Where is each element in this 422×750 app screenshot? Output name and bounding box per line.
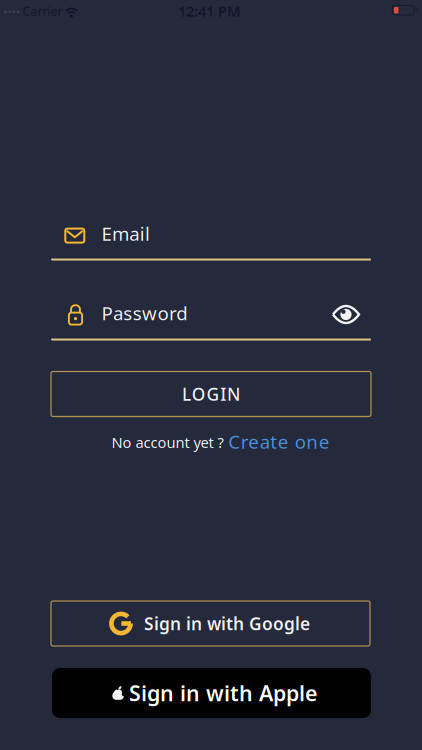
staticText: LOGIN — [182, 382, 240, 405]
button[interactable]: Sign in with Google — [51, 601, 370, 646]
button[interactable]: Show password — [324, 292, 368, 336]
staticText: Create one — [228, 429, 330, 454]
button[interactable]: Create one — [228, 429, 330, 454]
staticText: 12:41 PM — [178, 1, 241, 21]
button[interactable]: LOGIN — [51, 371, 371, 416]
staticText: Sign in with Google — [144, 612, 310, 635]
button[interactable]: Sign in with Apple — [52, 668, 371, 718]
secureTextField[interactable]: Password — [51, 296, 371, 340]
staticText: Email — [101, 221, 150, 246]
staticText: Sign in with Apple — [129, 679, 317, 707]
staticText: Password — [101, 301, 187, 325]
staticText: Carrier — [22, 3, 62, 19]
textField[interactable]: Email — [51, 216, 371, 260]
staticText: No account yet ? — [111, 433, 223, 452]
